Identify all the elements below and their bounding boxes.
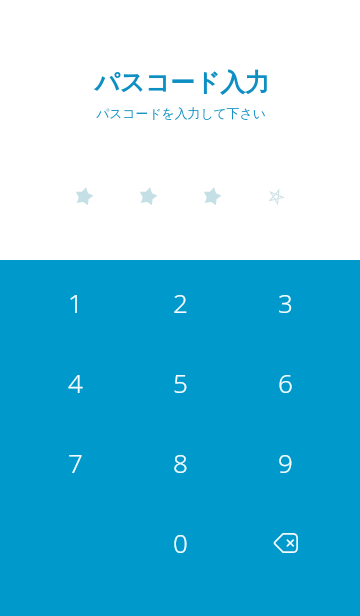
staticText: 5 [173, 365, 188, 400]
button[interactable]: 6 [240, 342, 360, 422]
staticText: 2 [173, 285, 188, 320]
button[interactable]: 5 [120, 342, 240, 422]
staticText: 7 [68, 445, 83, 480]
button[interactable]: 1 [0, 262, 120, 342]
staticText: 9 [278, 445, 293, 480]
staticText: 1 [68, 285, 83, 320]
staticText: 3 [278, 285, 293, 320]
staticText: 6 [278, 365, 293, 400]
button[interactable]: 3 [240, 262, 360, 342]
staticText: 0 [173, 525, 188, 560]
button[interactable]: 4 [0, 342, 120, 422]
button[interactable]: Backspace [240, 502, 360, 582]
button[interactable]: 2 [120, 262, 240, 342]
button[interactable]: 7 [0, 422, 120, 502]
button[interactable]: 8 [120, 422, 240, 502]
staticText: 8 [173, 445, 188, 480]
staticText: パスコード入力 [94, 67, 270, 98]
button[interactable]: 9 [240, 422, 360, 502]
staticText: パスコードを入力して下さい [96, 106, 266, 122]
staticText: 4 [68, 365, 83, 400]
button[interactable]: 0 [120, 502, 240, 582]
